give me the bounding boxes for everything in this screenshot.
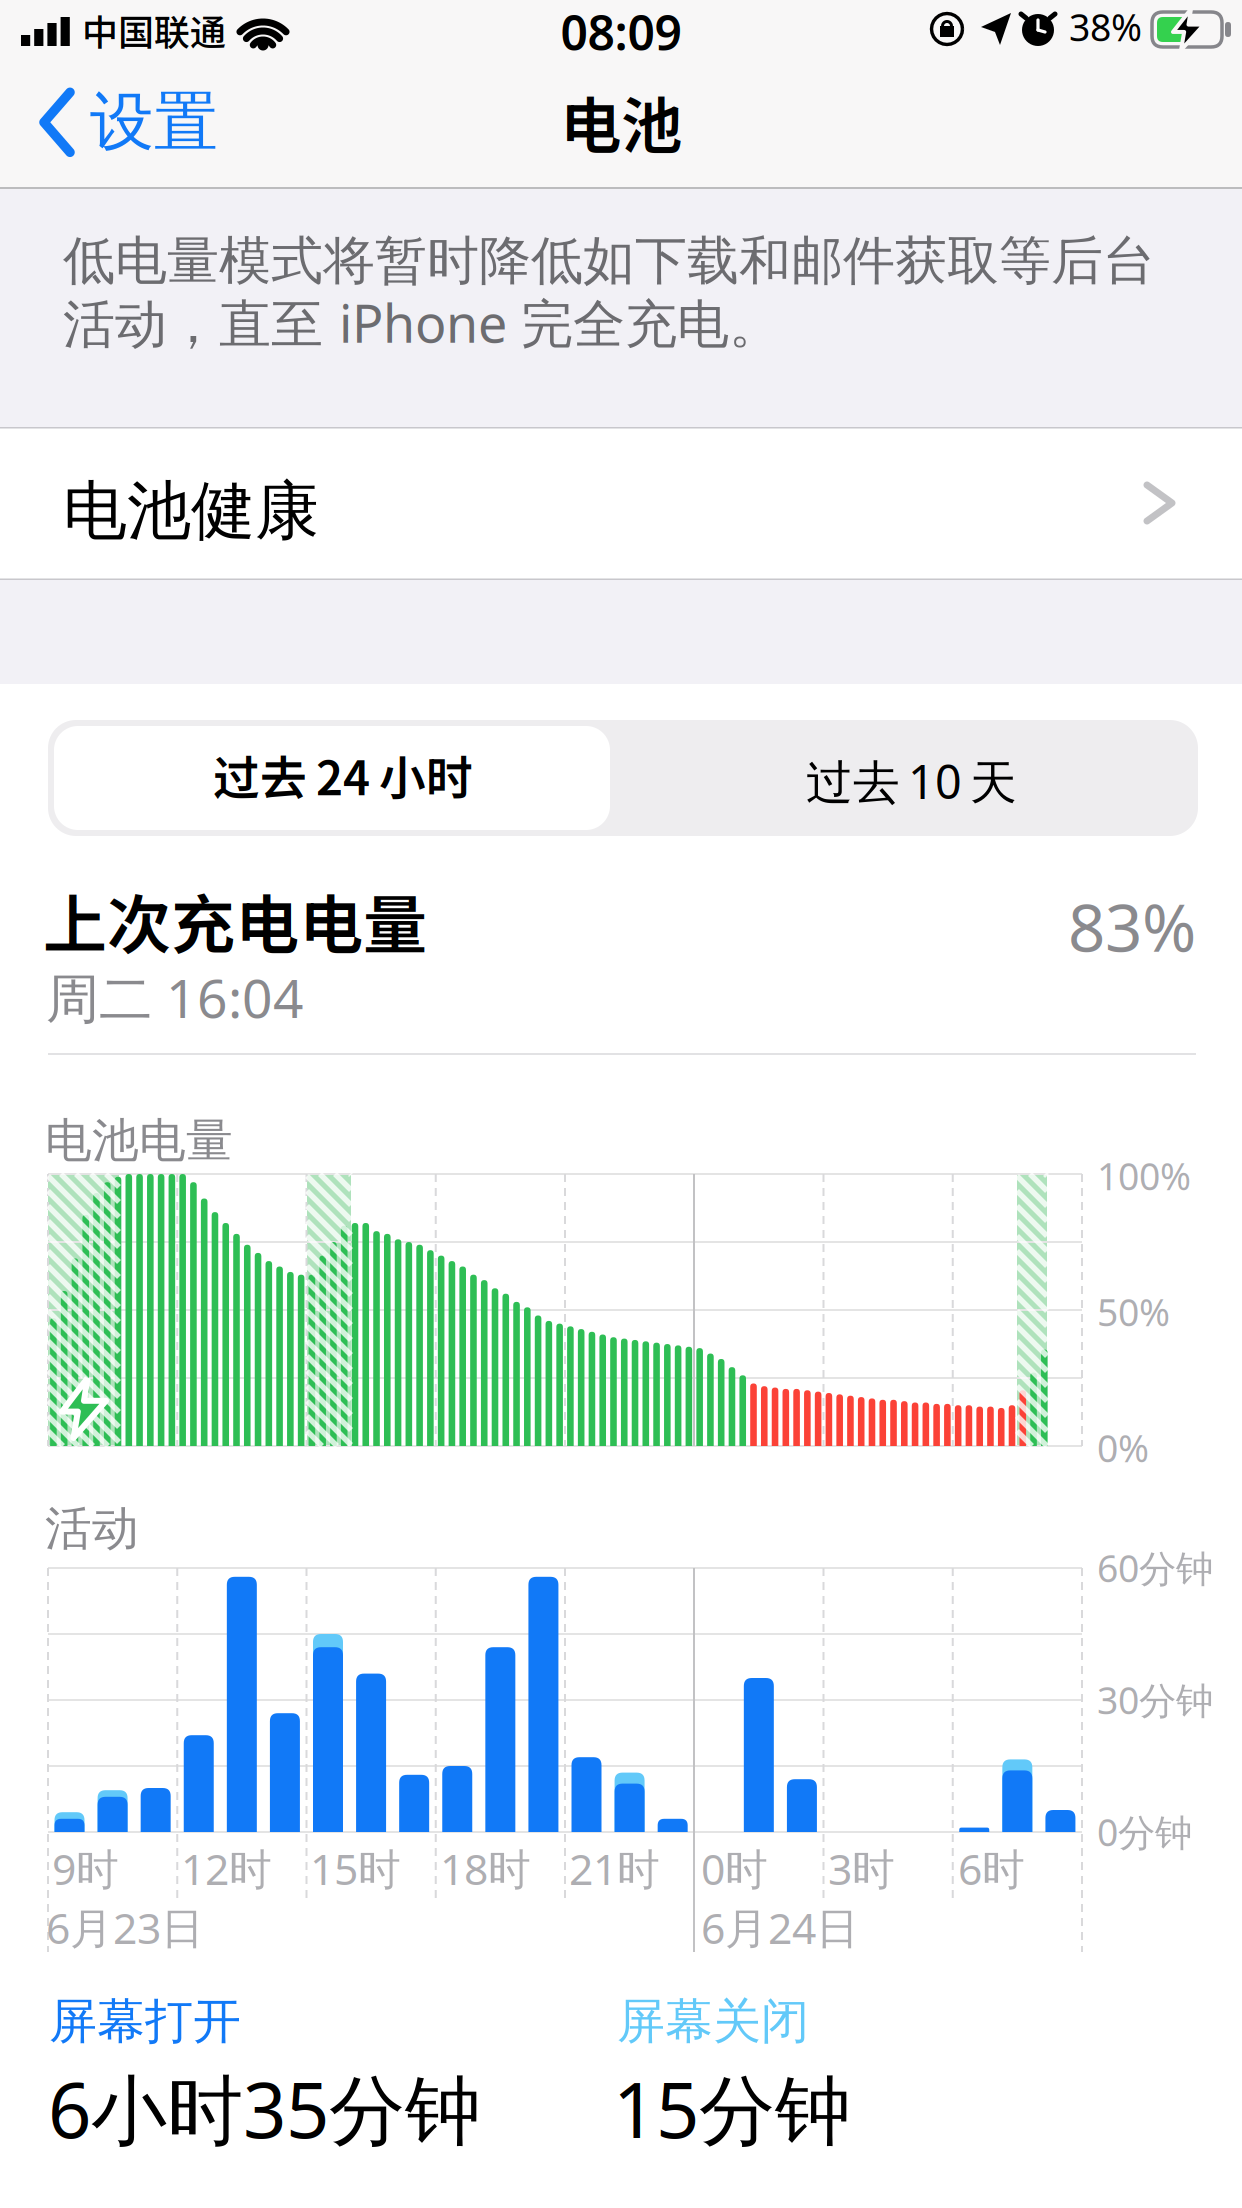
button[interactable]: 过去 24 小时 (54, 726, 610, 830)
staticText: 50% (1097, 1287, 1170, 1337)
staticText: 周二 16:04 (46, 962, 304, 1033)
button[interactable]: 设置 (40, 83, 218, 162)
staticText: 18时 (440, 1840, 531, 1897)
staticText: 0时 (701, 1840, 768, 1897)
staticText: 15分钟 (613, 2058, 851, 2159)
staticText: 12时 (181, 1840, 272, 1897)
staticText: 0分钟 (1097, 1807, 1192, 1857)
staticText: 9时 (52, 1840, 119, 1897)
staticText: 83% (1068, 883, 1196, 970)
staticText: 设置 (90, 83, 218, 162)
staticText: 过去 24 小时 (213, 741, 473, 809)
staticText: 活动，直至 iPhone 完全充电。 (63, 288, 781, 357)
staticText: 屏幕关闭 (617, 1992, 809, 2051)
staticText: 中国联通 (82, 4, 226, 56)
button[interactable]: 过去 10 天 (612, 726, 1198, 830)
staticText: 0% (1097, 1423, 1149, 1473)
staticText: 15时 (310, 1840, 401, 1897)
staticText: 电池健康 (63, 472, 319, 551)
staticText: 30分钟 (1097, 1675, 1213, 1725)
staticText: 6月23日 (46, 1899, 204, 1956)
staticText: 活动 (45, 1500, 139, 1557)
staticText: 过去 10 天 (806, 750, 1017, 812)
staticText: 3时 (828, 1840, 895, 1897)
staticText: 60分钟 (1097, 1543, 1213, 1593)
staticText: 21时 (569, 1840, 660, 1897)
staticText: 上次充电电量 (43, 874, 427, 967)
staticText: 08:09 (560, 0, 681, 64)
button[interactable]: 电池健康 (0, 428, 1242, 2208)
staticText: 屏幕打开 (49, 1992, 241, 2051)
staticText: 电池 (560, 77, 682, 166)
staticText: 6时 (958, 1840, 1025, 1897)
staticText: 100% (1097, 1151, 1191, 1201)
staticText: 低电量模式将暂时降低如下载和邮件获取等后台 (63, 229, 1155, 293)
staticText: 6月24日 (701, 1899, 859, 1956)
staticText: 6小时35分钟 (48, 2058, 481, 2159)
staticText: 38% (1069, 2, 1142, 52)
staticText: 电池电量 (45, 1112, 233, 1169)
